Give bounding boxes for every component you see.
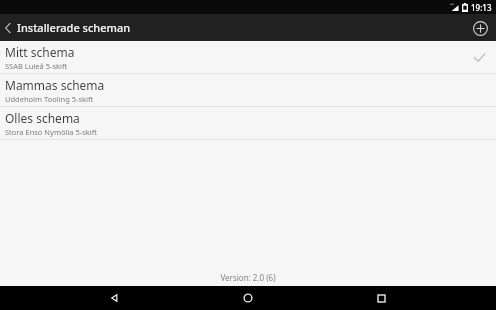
staticText: Mammas schema: [5, 77, 105, 93]
staticText: 19:13: [471, 2, 492, 13]
button[interactable]: Back: [97, 286, 133, 310]
staticText: Stora Enso Nymölla 5-skift: [5, 127, 97, 137]
staticText: Version: 2.0 (6): [220, 272, 276, 283]
button[interactable]: Home: [230, 286, 266, 310]
button[interactable]: Recents: [363, 286, 399, 310]
staticText: Installerade scheman: [17, 20, 131, 35]
button[interactable]: Mammas schema: [0, 74, 496, 106]
other: Back: [4, 22, 12, 34]
staticText: SSAB Luleå 5-skift: [5, 61, 68, 71]
button[interactable]: Olles schema: [0, 107, 496, 139]
button[interactable]: Add: [470, 18, 490, 38]
button[interactable]: Back: [0, 16, 137, 39]
staticText: Mitt schema: [5, 44, 75, 60]
staticText: Olles schema: [5, 110, 80, 126]
staticText: Uddeholm Tooling 5-skift: [5, 94, 94, 104]
button[interactable]: Mitt schema: [0, 41, 496, 73]
